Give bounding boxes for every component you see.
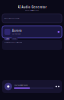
- staticText: Calm: [6, 38, 9, 39]
- button[interactable]: Describe your audio…: [2, 14, 62, 23]
- staticText: Tap to pick a narration style: [4, 42, 22, 43]
- button[interactable]: Calm: [4, 37, 10, 40]
- staticText: Warm · English: [12, 33, 21, 35]
- staticText: AI Audio Generator: [17, 5, 46, 9]
- staticText: Aurora: [12, 29, 22, 33]
- staticText: News: [13, 38, 17, 39]
- button[interactable]: Aurora: [2, 26, 62, 38]
- staticText: Generate lifelike voice: [25, 10, 39, 11]
- button[interactable]: More: [55, 86, 59, 87]
- button[interactable]: Play: [4, 83, 12, 90]
- staticText: Your audio is ready: [14, 84, 28, 86]
- button[interactable]: News: [11, 37, 18, 40]
- staticText: Describe your audio…: [4, 17, 20, 19]
